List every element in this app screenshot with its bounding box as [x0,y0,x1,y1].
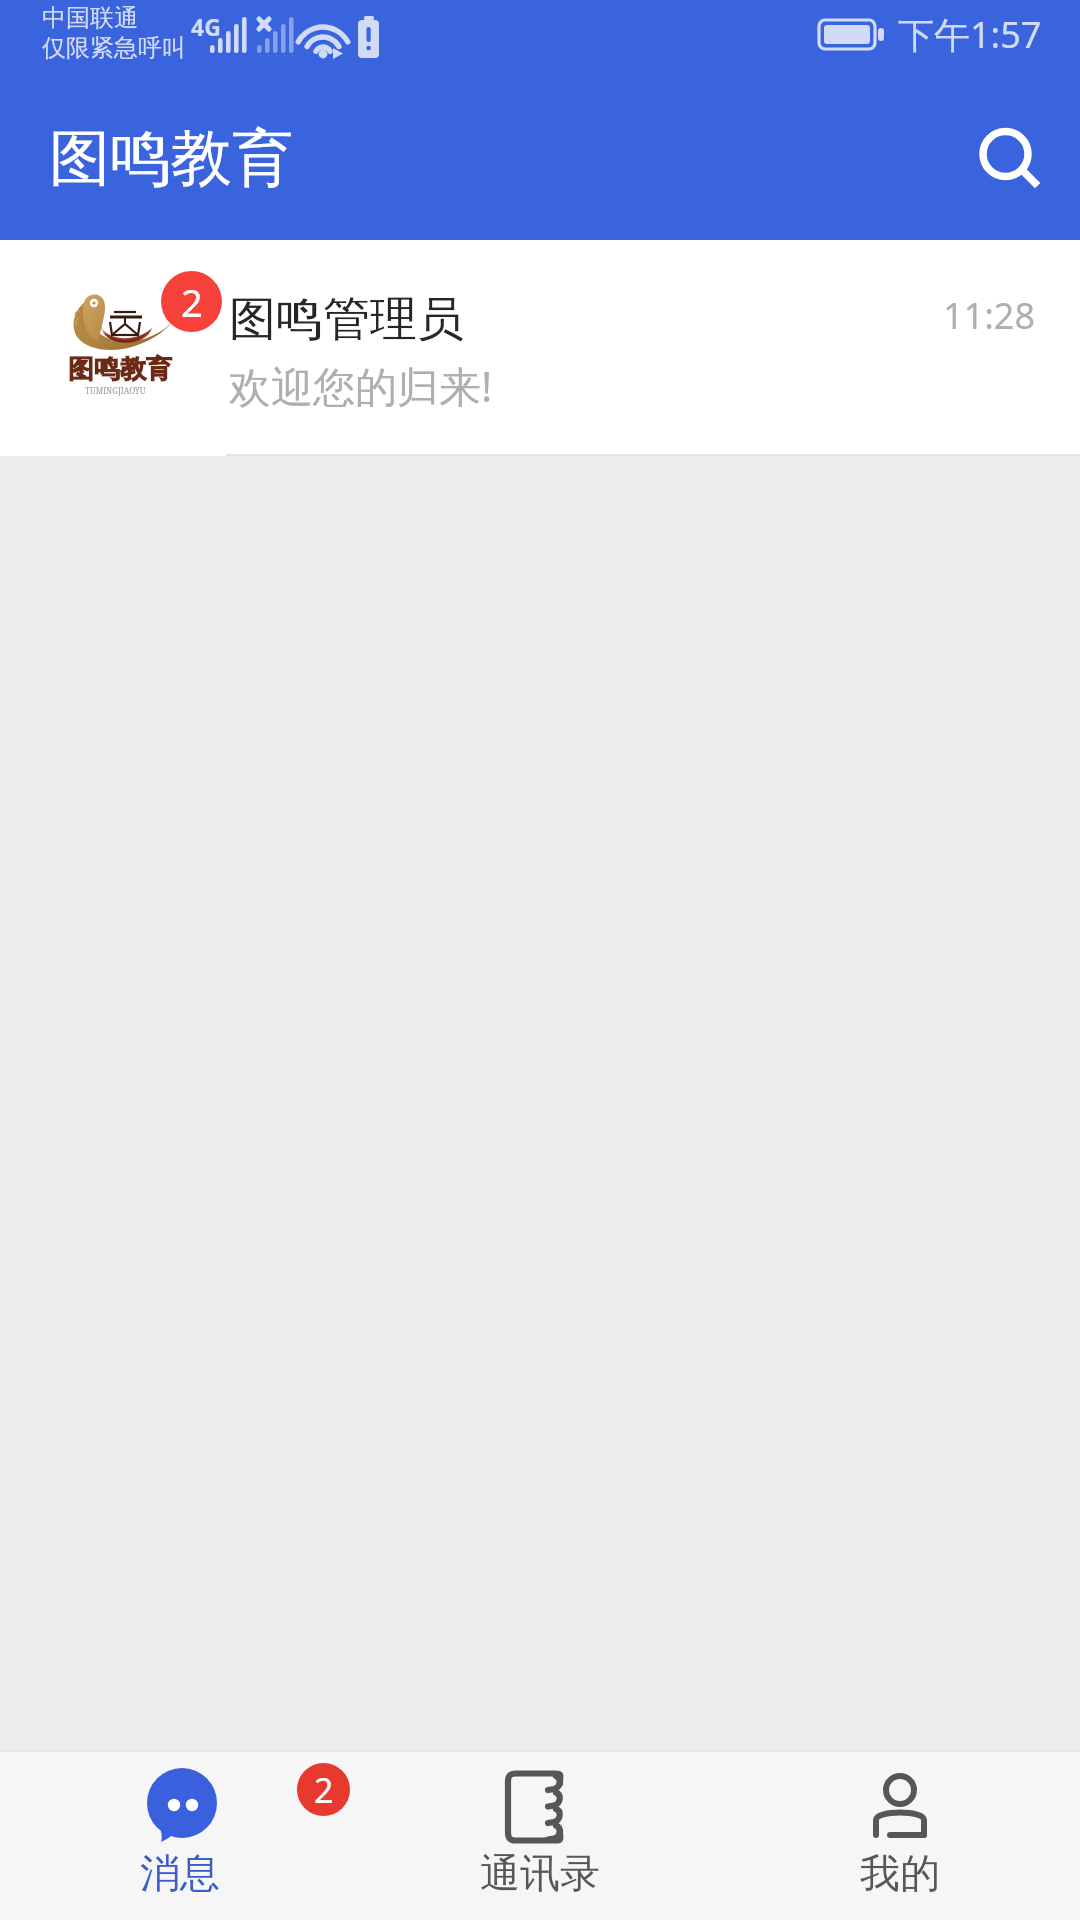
staticText: 图鸣教育 [49,120,293,197]
staticText: 中国联通 [42,3,138,33]
button[interactable]: 通讯录 [360,1750,720,1920]
staticText: 图鸣教育 [68,353,172,386]
staticText: 11:28 [943,291,1036,340]
staticText: 我的 [860,1848,940,1898]
staticText: 2 [181,276,203,328]
button[interactable]: 消息 [0,1750,360,1920]
staticText: 4G [191,11,221,42]
staticText: 欢迎您的归来! [229,357,493,414]
staticText: 下午1:57 [898,10,1042,59]
button[interactable]: 图鸣教育 [0,240,1080,456]
button[interactable]: 我的 [720,1750,1080,1920]
staticText: 仅限紧急呼叫 [42,33,186,63]
button[interactable]: Search [950,99,1060,209]
staticText: 消息 [140,1848,220,1898]
staticText: 通讯录 [480,1848,600,1898]
staticText: 2 [314,1767,334,1813]
staticText: TUMINGJIAOYU [85,385,146,396]
staticText: 图鸣管理员 [229,290,464,349]
